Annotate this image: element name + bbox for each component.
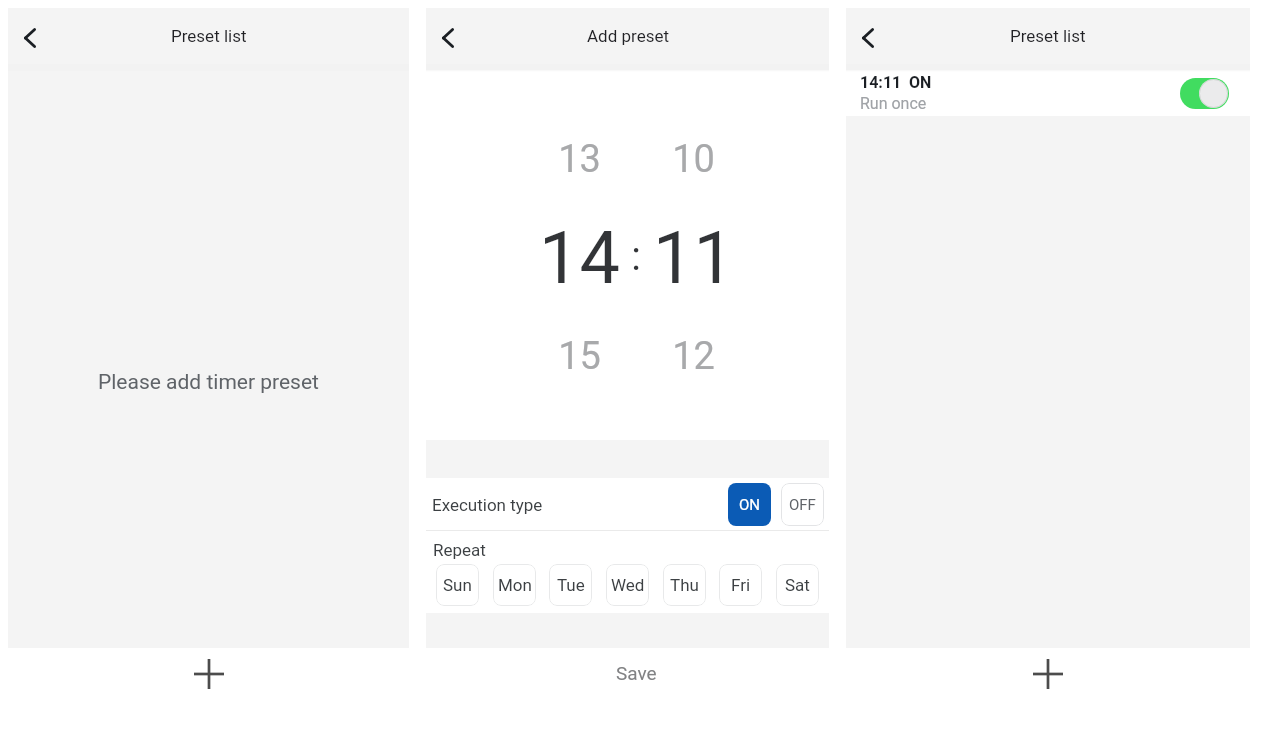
staticText: 14:11 — [860, 73, 902, 92]
button[interactable]: Back — [427, 15, 469, 61]
staticText: 15 — [558, 334, 601, 379]
staticText: Save — [616, 662, 657, 684]
staticText: Repeat — [433, 540, 486, 560]
button[interactable]: Sun — [436, 564, 479, 606]
button[interactable]: OFF — [781, 483, 824, 526]
button[interactable]: Wed — [606, 564, 649, 606]
button[interactable]: 14:11 — [846, 64, 1250, 116]
staticText: 14 — [539, 216, 620, 300]
staticText: Mon — [498, 575, 532, 595]
staticText: Fri — [731, 575, 751, 595]
staticText: ON — [909, 73, 932, 92]
button[interactable]: Sat — [776, 564, 819, 606]
staticText: Please add timer preset — [98, 370, 319, 395]
staticText: Sun — [443, 575, 472, 595]
button[interactable]: Back — [847, 15, 889, 61]
staticText: Run once — [860, 94, 927, 113]
button[interactable]: Add preset — [8, 648, 409, 710]
button[interactable]: Fri — [719, 564, 762, 606]
staticText: 13 — [558, 137, 601, 182]
staticText: : — [631, 233, 641, 280]
staticText: Sat — [785, 575, 810, 595]
button[interactable]: ON — [728, 483, 771, 526]
staticText: Execution type — [432, 495, 543, 515]
staticText: Add preset — [587, 26, 669, 46]
button[interactable]: Thu — [663, 564, 706, 606]
staticText: 10 — [672, 137, 715, 182]
staticText: 11 — [653, 216, 734, 300]
staticText: 12 — [672, 334, 715, 379]
staticText: Wed — [611, 575, 645, 595]
staticText: Preset list — [171, 26, 247, 46]
button[interactable]: Back — [9, 15, 51, 61]
staticText: ON — [739, 496, 761, 514]
button[interactable]: Mon — [493, 564, 536, 606]
staticText: OFF — [789, 496, 816, 514]
button[interactable]: Save — [426, 648, 829, 710]
staticText: Preset list — [1010, 26, 1086, 46]
button[interactable]: Add preset — [846, 648, 1250, 710]
staticText: Tue — [557, 575, 585, 595]
button[interactable]: Toggle preset — [1180, 78, 1229, 109]
staticText: Thu — [670, 575, 699, 595]
button[interactable]: Tue — [549, 564, 592, 606]
